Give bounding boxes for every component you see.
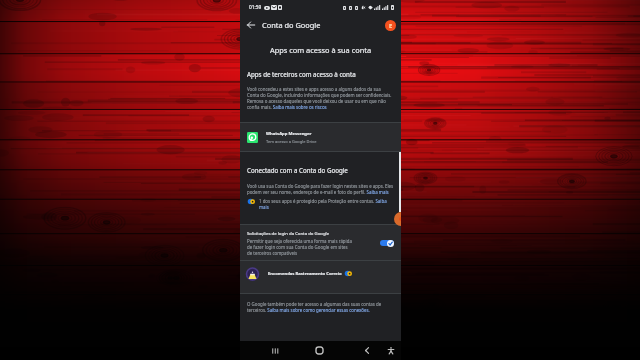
button[interactable]: Voltar (359, 341, 374, 360)
staticText: 1 dos seus apps é protegido pela Proteçã… (259, 198, 394, 210)
staticText: Apps de terceiros com acesso à conta (247, 70, 356, 78)
staticText: Apps com acesso à sua conta (240, 45, 401, 55)
button[interactable]: Encomendas Rastreamento Correio (240, 261, 401, 293)
button[interactable]: Ajuda (394, 212, 401, 226)
button[interactable]: Solicitações de login da Conta do Google (240, 225, 401, 260)
staticText: Conectado com a Conta do Google (247, 166, 348, 174)
button[interactable]: Apps recentes (267, 341, 282, 360)
staticText: Tem acesso a Google Drive (266, 139, 317, 144)
button[interactable]: Ativar solicitações de login (380, 239, 394, 247)
staticText: Você concedeu a estes sites e apps acess… (247, 86, 394, 110)
staticText: Conta do Google (262, 20, 321, 30)
staticText: Você usa sua Conta do Google para fazer … (247, 183, 394, 195)
staticText: O Google também pode ter acesso a alguma… (247, 301, 394, 313)
staticText: WhatsApp Messenger (266, 131, 312, 137)
staticText: E (389, 22, 393, 30)
staticText: 01:59 (249, 4, 262, 11)
button[interactable]: Acessibilidade (383, 341, 398, 360)
staticText: Solicitações de login da Conta do Google (247, 230, 330, 236)
button[interactable]: WhatsApp Messenger (240, 123, 401, 151)
button[interactable]: Início (312, 341, 327, 360)
staticText: Encomendas Rastreamento Correio (268, 271, 342, 277)
staticText: Permitir que seja oferecida uma forma ma… (247, 238, 353, 256)
button[interactable]: Voltar (244, 18, 258, 32)
button[interactable]: Conta Google (385, 20, 396, 31)
